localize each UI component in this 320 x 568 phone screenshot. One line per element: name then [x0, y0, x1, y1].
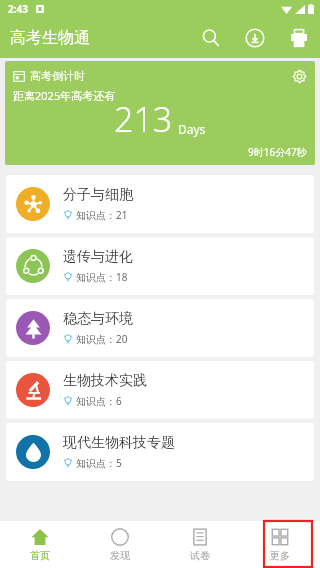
- button[interactable]: 生物技术实践: [6, 361, 314, 419]
- button[interactable]: 更多: [240, 521, 320, 568]
- button[interactable]: 高考倒计时: [5, 61, 315, 165]
- button[interactable]: 发现: [80, 521, 160, 568]
- button[interactable]: 分子与细胞: [6, 175, 314, 233]
- staticText: 首页: [30, 549, 50, 562]
- staticText: 更多: [270, 549, 290, 562]
- staticText: 知识点：6: [76, 394, 122, 408]
- button[interactable]: Search: [198, 25, 224, 51]
- button[interactable]: 遗传与进化: [6, 237, 314, 295]
- staticText: 稳态与环境: [63, 310, 133, 328]
- staticText: 知识点：5: [76, 456, 122, 470]
- button[interactable]: Print: [286, 25, 312, 51]
- button[interactable]: 现代生物科技专题: [6, 423, 314, 481]
- button[interactable]: Settings: [290, 67, 308, 85]
- staticText: 分子与细胞: [63, 186, 133, 204]
- staticText: 高考倒计时: [30, 69, 85, 83]
- staticText: 知识点：21: [76, 208, 128, 222]
- staticText: 现代生物科技专题: [63, 434, 175, 452]
- button[interactable]: 稳态与环境: [6, 299, 314, 357]
- staticText: 知识点：20: [76, 332, 128, 346]
- staticText: 2:43: [8, 2, 28, 16]
- button[interactable]: Download: [242, 25, 268, 51]
- button[interactable]: 首页: [0, 521, 80, 568]
- staticText: 遗传与进化: [63, 248, 133, 266]
- staticText: 213: [114, 96, 173, 142]
- staticText: 知识点：18: [76, 270, 128, 284]
- staticText: 生物技术实践: [63, 372, 147, 390]
- button[interactable]: 试卷: [160, 521, 240, 568]
- staticText: Days: [178, 121, 206, 137]
- staticText: 发现: [110, 549, 130, 562]
- staticText: 9时16分47秒: [248, 145, 307, 159]
- staticText: 距离2025年高考还有: [13, 88, 116, 103]
- staticText: 高考生物通: [10, 28, 90, 48]
- staticText: 试卷: [190, 549, 210, 562]
